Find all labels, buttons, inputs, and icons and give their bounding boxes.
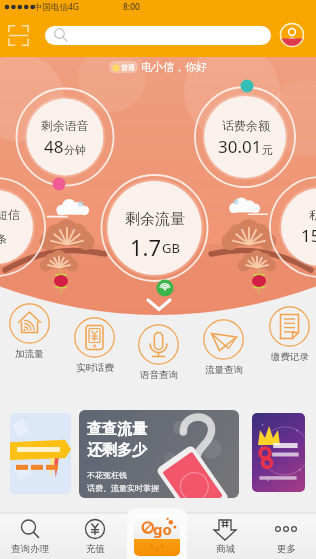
staticText: 1.7 [130, 232, 162, 258]
button[interactable]: Search [45, 26, 271, 45]
staticText: 查查流量 [87, 420, 147, 439]
staticText: 1500 [301, 224, 316, 247]
staticText: 流量查询 [205, 364, 243, 376]
button[interactable]: 流量查询 [192, 319, 254, 381]
staticText: 话费余额 [222, 118, 270, 133]
button[interactable]: 商城 [194, 514, 256, 559]
staticText: 普通 [121, 63, 135, 72]
staticText: GB [162, 239, 180, 257]
button[interactable]: Promotion card [252, 413, 305, 492]
button[interactable]: Scan QR code [6, 23, 30, 47]
staticText: 积分 [309, 207, 316, 222]
button[interactable]: 语音查询 [127, 324, 189, 386]
staticText: go [153, 519, 172, 539]
staticText: 条 [0, 232, 7, 246]
button[interactable]: 缴费记录 [258, 306, 316, 368]
staticText: 剩余语音 [41, 118, 89, 133]
button[interactable]: 剩余语音 [3, 118, 127, 166]
button[interactable]: Promotion card [10, 413, 71, 494]
staticText: 商城 [216, 543, 235, 555]
staticText: 电小信，你好 [141, 60, 207, 74]
button[interactable]: 积分 [258, 207, 316, 255]
staticText: 中国电信4G [34, 1, 80, 13]
staticText: 元 [262, 143, 273, 157]
button[interactable]: 充值 [64, 514, 126, 559]
button[interactable]: 实时话费 [63, 317, 125, 379]
staticText: 30.01 [218, 135, 262, 158]
staticText: 充值 [86, 543, 105, 555]
staticText: 查询办理 [11, 543, 49, 555]
staticText: 分钟 [64, 143, 86, 157]
button[interactable]: 查询办理 [0, 514, 61, 559]
staticText: 加流量 [15, 348, 44, 360]
staticText: 更多 [277, 543, 296, 555]
button[interactable]: 加流量 [0, 303, 60, 365]
staticText: 剩余短信 [0, 207, 20, 222]
button[interactable]: Profile [278, 21, 306, 49]
staticText: 剩余流量 [125, 210, 185, 229]
staticText: 语音查询 [140, 369, 178, 381]
button[interactable]: Go home [134, 515, 180, 556]
staticText: 8:00 [123, 1, 140, 13]
staticText: 不花冤枉钱 [87, 470, 127, 480]
staticText: 实时话费 [76, 362, 114, 374]
button[interactable]: 话费余额 [183, 118, 307, 166]
staticText: 缴费记录 [271, 351, 309, 363]
staticText: 话费、流量实时掌握 [87, 483, 159, 493]
button[interactable]: 剩余短信 [0, 207, 58, 255]
button[interactable]: 更多 [255, 514, 316, 559]
button[interactable]: 普通 [109, 61, 138, 73]
staticText: 还剩多少 [87, 441, 147, 460]
button[interactable]: 剩余流量 [93, 210, 217, 258]
button[interactable]: Check data usage banner [79, 410, 239, 498]
staticText: 48 [44, 135, 64, 158]
